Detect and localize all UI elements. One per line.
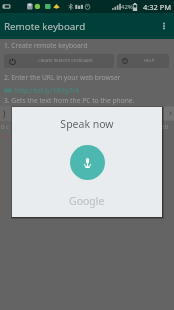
button[interactable]: CREATE REMOTE KEYBOARD (4, 54, 114, 68)
button[interactable]: HELP (117, 54, 169, 68)
staticText: 42% (121, 3, 133, 11)
staticText: Remote keyboard (4, 20, 86, 33)
staticText: Google (69, 194, 105, 208)
staticText: 4:32 PM (143, 2, 172, 12)
staticText: No (1, 132, 10, 140)
button[interactable]: Speak now (12, 107, 162, 217)
staticText: 3. Gets the text from the PC to the phon… (4, 96, 135, 105)
staticText: http://bit.ly/1R9g7r4 (15, 86, 79, 95)
button[interactable]: http://bit.ly/1R9g7r4 (4, 86, 79, 95)
staticText: ) (3, 108, 6, 119)
staticText: /20 (159, 123, 169, 131)
staticText: 1. Create remote keyboard (4, 41, 88, 50)
staticText: 2. Enter the URL in your web browser (4, 73, 121, 82)
staticText: 0 c (1, 123, 9, 131)
button[interactable]: More options (153, 13, 174, 39)
staticText: HELP (144, 58, 155, 64)
staticText: CREATE REMOTE KEYBOARD (38, 58, 93, 64)
button[interactable]: Microphone (70, 145, 105, 180)
button[interactable]: Send (164, 107, 174, 120)
staticText: Speak now (60, 117, 114, 131)
